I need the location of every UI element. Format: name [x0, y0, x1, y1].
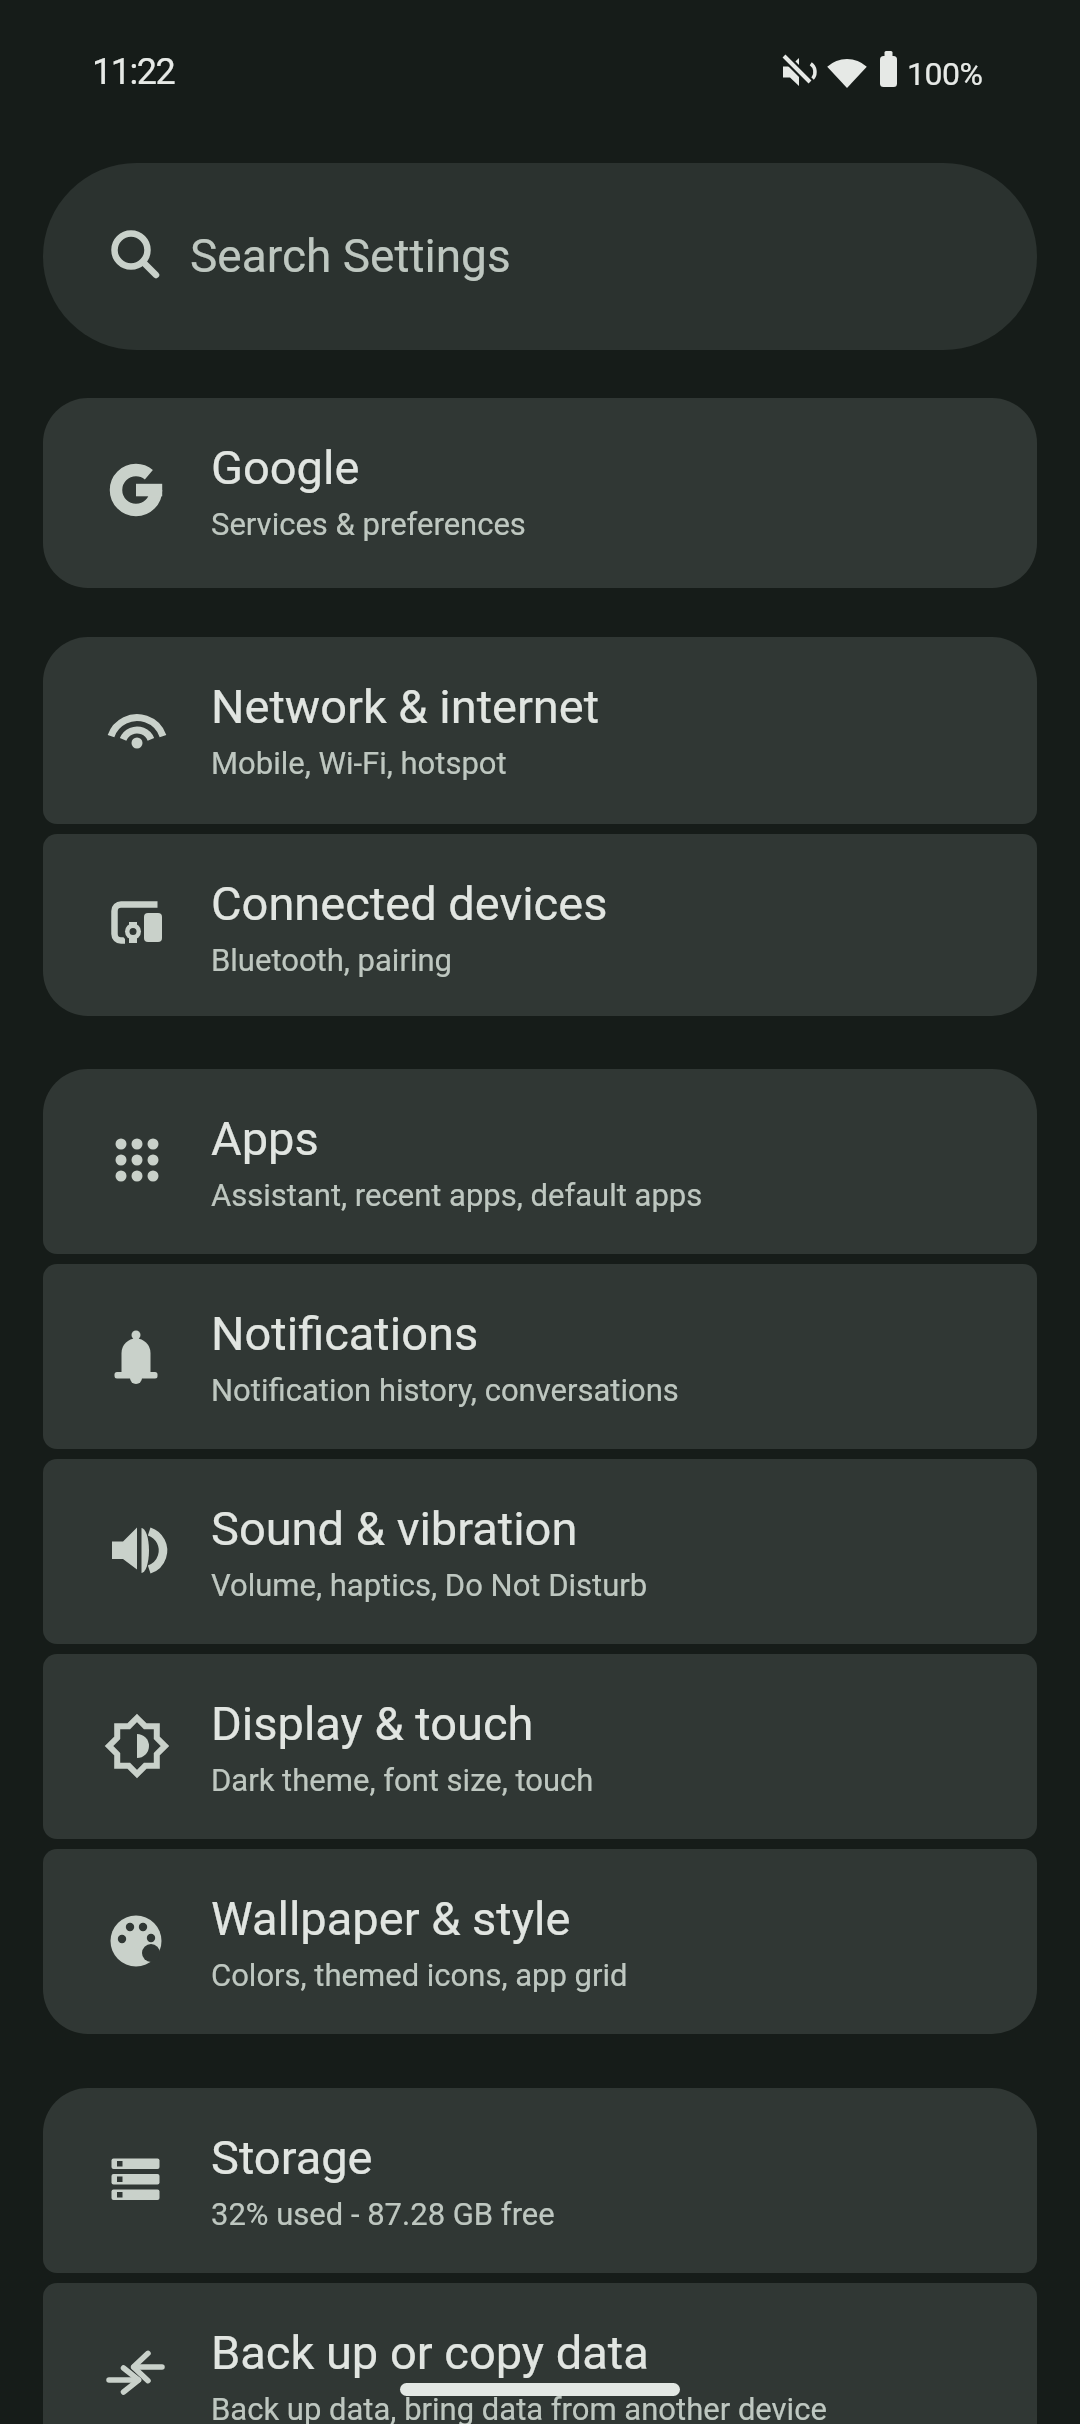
button[interactable]: Search Settings: [43, 163, 1037, 350]
staticText: Sound & vibration: [211, 1501, 578, 1556]
staticText: Services & preferences: [211, 506, 526, 542]
staticText: Bluetooth, pairing: [211, 942, 452, 978]
staticText: Network & internet: [211, 679, 600, 734]
staticText: Assistant, recent apps, default apps: [211, 1177, 703, 1213]
staticText: Notifications: [211, 1306, 479, 1361]
staticText: Volume, haptics, Do Not Disturb: [211, 1567, 648, 1603]
staticText: Dark theme, font size, touch: [211, 1762, 594, 1798]
staticText: Search Settings: [190, 229, 511, 283]
button[interactable]: Apps: [43, 1069, 1037, 1254]
staticText: Notification history, conversations: [211, 1372, 679, 1408]
staticText: 11:22: [92, 51, 175, 93]
button[interactable]: Back up or copy data: [43, 2283, 1037, 2424]
staticText: Display & touch: [211, 1696, 534, 1751]
staticText: Storage: [211, 2130, 373, 2185]
button[interactable]: Notifications: [43, 1264, 1037, 1449]
button[interactable]: Google: [43, 398, 1037, 588]
staticText: 32% used - 87.28 GB free: [211, 2196, 555, 2232]
button[interactable]: Network & internet: [43, 637, 1037, 824]
button[interactable]: Connected devices: [43, 834, 1037, 1016]
button[interactable]: Display & touch: [43, 1654, 1037, 1839]
staticText: Google: [211, 440, 360, 495]
staticText: Mobile, Wi-Fi, hotspot: [211, 745, 507, 781]
button[interactable]: Sound & vibration: [43, 1459, 1037, 1644]
staticText: Back up or copy data: [211, 2325, 649, 2380]
button[interactable]: Storage: [43, 2088, 1037, 2273]
staticText: Wallpaper & style: [211, 1891, 571, 1946]
staticText: Connected devices: [211, 876, 608, 931]
staticText: 100%: [907, 55, 983, 93]
staticText: Back up data, bring data from another de…: [211, 2391, 827, 2424]
staticText: Apps: [211, 1111, 319, 1166]
staticText: Colors, themed icons, app grid: [211, 1957, 628, 1993]
button[interactable]: Wallpaper & style: [43, 1849, 1037, 2034]
